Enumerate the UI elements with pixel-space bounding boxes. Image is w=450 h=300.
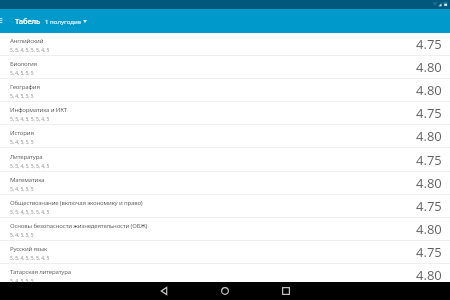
- staticText: 5, 4, 5, 5, 5: [10, 139, 34, 146]
- staticText: Английский: [10, 36, 44, 44]
- staticText: 5, 5, 4, 5, 5, 5, 4, 5: [10, 47, 50, 54]
- staticText: 4.80: [416, 174, 442, 192]
- staticText: Биология: [10, 59, 37, 67]
- button[interactable]: Математика: [0, 172, 450, 195]
- staticText: История: [10, 128, 34, 136]
- staticText: 4.75: [416, 35, 442, 53]
- button[interactable]: Home: [215, 282, 235, 300]
- staticText: 4.75: [416, 197, 442, 215]
- staticText: 5, 5, 4, 5, 5, 5, 4, 5: [10, 209, 50, 216]
- button[interactable]: Back: [154, 282, 174, 300]
- staticText: 4.75: [416, 243, 442, 261]
- staticText: Информатика и ИКТ: [10, 105, 67, 113]
- staticText: 5, 5, 4, 5, 5, 5, 4, 5: [10, 255, 50, 262]
- button[interactable]: Информатика и ИКТ: [0, 102, 450, 125]
- staticText: Литература: [10, 152, 43, 160]
- staticText: 4.80: [416, 58, 442, 76]
- button[interactable]: Recent apps: [276, 282, 296, 300]
- button[interactable]: Биология: [0, 56, 450, 79]
- staticText: 5, 4, 5, 5, 5: [10, 232, 34, 239]
- staticText: Табель: [15, 16, 41, 26]
- staticText: 4.80: [416, 220, 442, 238]
- button[interactable]: История: [0, 125, 450, 148]
- staticText: 4.80: [416, 266, 442, 282]
- staticText: 4.80: [416, 127, 442, 145]
- staticText: 1 полугодие: [45, 17, 82, 25]
- button[interactable]: Английский: [0, 33, 450, 56]
- button[interactable]: Русский язык: [0, 241, 450, 264]
- button[interactable]: Татарская литература: [0, 264, 450, 282]
- button[interactable]: Open navigation drawer: [0, 9, 5, 33]
- staticText: Математика: [10, 175, 45, 183]
- staticText: 5, 5, 4, 5, 5, 5, 4, 5: [10, 116, 50, 123]
- staticText: Основы безопасности жизнедеятельности (О…: [10, 221, 148, 229]
- staticText: 5, 5, 4, 5, 5, 5, 4, 5: [10, 163, 50, 170]
- staticText: 4.75: [416, 104, 442, 122]
- staticText: Татарская литература: [10, 267, 71, 275]
- button[interactable]: География: [0, 79, 450, 102]
- button[interactable]: 1 полугодие: [45, 17, 87, 25]
- staticText: Обществознание (включая экономику и прав…: [10, 198, 143, 206]
- staticText: 5, 4, 5, 5, 5: [10, 93, 34, 100]
- staticText: 4.75: [416, 151, 442, 169]
- staticText: 5, 4, 5, 5, 5: [10, 186, 34, 193]
- staticText: 5, 4, 5, 5, 5: [10, 278, 34, 282]
- staticText: Русский язык: [10, 244, 48, 252]
- staticText: География: [10, 82, 40, 90]
- staticText: 5, 4, 5, 5, 5: [10, 70, 34, 77]
- button[interactable]: Обществознание (включая экономику и прав…: [0, 195, 450, 218]
- staticText: 4.80: [416, 81, 442, 99]
- button[interactable]: Литература: [0, 149, 450, 172]
- button[interactable]: Основы безопасности жизнедеятельности (О…: [0, 218, 450, 241]
